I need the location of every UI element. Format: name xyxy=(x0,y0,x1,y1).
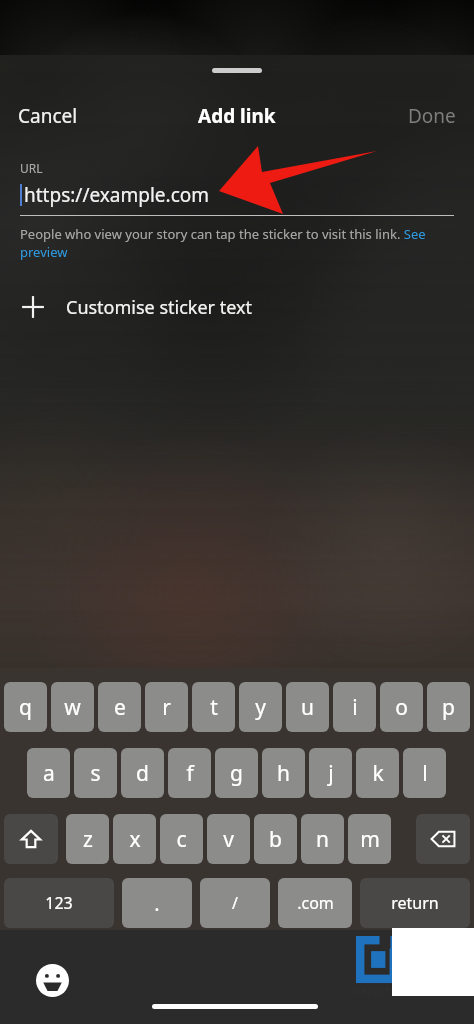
button[interactable]: 123 xyxy=(4,878,114,928)
button[interactable]: .com xyxy=(278,878,352,928)
button[interactable]: p xyxy=(427,682,470,732)
staticText: g xyxy=(230,759,243,788)
button[interactable]: Backspace xyxy=(416,814,470,864)
staticText: u xyxy=(301,693,314,722)
button[interactable]: Emoji keyboard xyxy=(28,956,76,1004)
staticText: n xyxy=(316,825,329,854)
button[interactable]: Done xyxy=(394,97,470,135)
button[interactable]: j xyxy=(309,748,352,798)
button[interactable]: m xyxy=(348,814,391,864)
button[interactable]: y xyxy=(239,682,282,732)
staticText: o xyxy=(395,693,408,722)
staticText: q xyxy=(19,693,32,722)
button[interactable]: r xyxy=(145,682,188,732)
staticText: . xyxy=(154,890,160,917)
staticText: Done xyxy=(408,103,456,129)
staticText: z xyxy=(83,825,93,854)
button[interactable]: d xyxy=(121,748,164,798)
staticText: m xyxy=(360,825,380,854)
button[interactable]: s xyxy=(74,748,117,798)
staticText: Customise sticker text xyxy=(66,295,253,320)
staticText: Add link xyxy=(198,103,276,129)
staticText: URL xyxy=(20,160,43,176)
button[interactable]: v xyxy=(207,814,250,864)
button[interactable]: x xyxy=(113,814,156,864)
staticText: 123 xyxy=(45,892,73,914)
staticText: l xyxy=(422,759,428,788)
staticText: b xyxy=(269,825,282,854)
staticText: t xyxy=(210,693,218,722)
button[interactable]: a xyxy=(27,748,70,798)
button[interactable]: k xyxy=(356,748,399,798)
button[interactable]: n xyxy=(301,814,344,864)
staticText: k xyxy=(372,759,384,788)
staticText: s xyxy=(90,759,101,788)
staticText: https://example.com xyxy=(24,182,210,208)
staticText: d xyxy=(136,759,149,788)
staticText: h xyxy=(277,759,290,788)
staticText: / xyxy=(232,892,238,914)
button[interactable]: Cancel xyxy=(4,97,92,135)
button[interactable]: q xyxy=(4,682,47,732)
button[interactable]: w xyxy=(51,682,94,732)
button[interactable]: o xyxy=(380,682,423,732)
staticText: x xyxy=(129,825,141,854)
staticText: r xyxy=(162,693,171,722)
staticText: c xyxy=(176,825,187,854)
button[interactable]: e xyxy=(98,682,141,732)
button[interactable]: Customise sticker text xyxy=(0,283,474,331)
staticText: .com xyxy=(297,892,334,914)
button[interactable]: c xyxy=(160,814,203,864)
button[interactable]: l xyxy=(403,748,446,798)
staticText: Cancel xyxy=(18,103,78,129)
staticText: return xyxy=(391,892,439,914)
button[interactable]: z xyxy=(66,814,109,864)
staticText: a xyxy=(43,759,55,788)
staticText: e xyxy=(114,693,126,722)
staticText: j xyxy=(328,759,334,788)
button[interactable]: b xyxy=(254,814,297,864)
button[interactable]: / xyxy=(200,878,270,928)
staticText: v xyxy=(223,825,234,854)
button[interactable]: i xyxy=(333,682,376,732)
button[interactable]: f xyxy=(168,748,211,798)
button[interactable]: t xyxy=(192,682,235,732)
button[interactable]: Shift xyxy=(4,814,58,864)
staticText: p xyxy=(442,693,455,722)
button[interactable]: g xyxy=(215,748,258,798)
button[interactable]: h xyxy=(262,748,305,798)
staticText: w xyxy=(64,693,81,722)
button[interactable]: u xyxy=(286,682,329,732)
button[interactable]: return xyxy=(360,878,470,928)
staticText: f xyxy=(186,759,194,788)
staticText: People who view your story can tap the s… xyxy=(20,225,454,261)
staticText: y xyxy=(255,693,266,722)
staticText: GADGETS TO USE xyxy=(354,984,429,996)
staticText: i xyxy=(352,693,358,722)
button[interactable]: . xyxy=(122,878,192,928)
